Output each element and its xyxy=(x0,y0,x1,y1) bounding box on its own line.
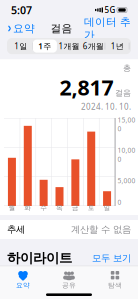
staticText: 1개월 xyxy=(58,41,79,51)
staticText: 현재 걷기 거리가 평소보다 늘었습니다. xyxy=(13,292,121,299)
button[interactable]: 요약 xyxy=(7,19,39,38)
button[interactable]: 1개월 xyxy=(57,40,81,53)
button[interactable]: 걸음 xyxy=(6,271,132,299)
button[interactable]: 1주 xyxy=(33,40,57,53)
staticText: 걸음 xyxy=(21,277,39,289)
staticText: 목 xyxy=(56,204,63,212)
staticText: 2,817 xyxy=(59,73,113,101)
button[interactable]: 데이터 추가 xyxy=(84,12,131,45)
staticText: 5G xyxy=(104,5,115,15)
staticText: 1년 xyxy=(111,41,124,51)
staticText: 0 xyxy=(117,198,121,206)
staticText: 요약 xyxy=(13,22,35,35)
staticText: 화 xyxy=(24,204,31,212)
staticText: 5:07 xyxy=(11,3,32,17)
staticText: 데이터 추가 xyxy=(84,15,131,42)
button[interactable]: 1년 xyxy=(105,40,129,53)
staticText: 계산할 수 없음 xyxy=(71,224,131,235)
staticText: 1일 xyxy=(14,41,27,51)
staticText: 2024. 10. 10. xyxy=(81,101,131,112)
staticText: 탐색 xyxy=(108,281,122,289)
staticText: 일 xyxy=(104,204,111,212)
button[interactable]: 6개월 xyxy=(81,40,105,53)
staticText: 걸음 xyxy=(115,88,131,98)
staticText: 총 xyxy=(123,63,131,73)
staticText: 하이라이트 xyxy=(7,250,72,266)
staticText: 토 xyxy=(88,204,95,212)
button[interactable]: 1일 xyxy=(9,40,33,53)
button[interactable]: 공유 xyxy=(46,269,92,290)
staticText: 15,000 xyxy=(117,115,135,133)
button[interactable]: 요약 xyxy=(0,269,46,290)
staticText: 모두 보기 xyxy=(92,252,131,264)
button[interactable]: 모두 보기 xyxy=(92,252,131,264)
staticText: 금 xyxy=(72,204,79,212)
staticText: 공유 xyxy=(62,281,76,289)
staticText: 요약 xyxy=(16,281,30,289)
staticText: 6개월 xyxy=(83,41,104,51)
button[interactable]: 추세 xyxy=(0,220,138,239)
staticText: 추세 xyxy=(7,224,25,235)
staticText: 1주 xyxy=(38,41,51,51)
staticText: 걸음 xyxy=(50,22,72,35)
button[interactable]: 탐색 xyxy=(92,269,138,290)
staticText: 월 xyxy=(8,204,15,212)
staticText: 5,000 xyxy=(117,176,135,185)
staticText: 수 xyxy=(40,204,47,212)
staticText: 10,000 xyxy=(117,146,135,163)
